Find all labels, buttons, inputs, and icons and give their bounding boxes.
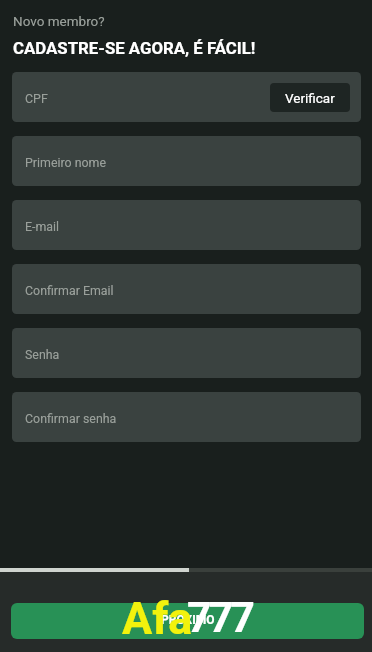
staticText: PRÓXIMO [161, 613, 215, 627]
button[interactable]: Confirmar Email [12, 264, 361, 314]
staticText: Confirmar Email [25, 283, 114, 298]
button[interactable]: PRÓXIMO [11, 603, 364, 639]
button[interactable]: Confirmar senha [12, 392, 361, 442]
button[interactable]: Senha [12, 328, 361, 378]
other: Progresso do cadastro [0, 568, 372, 572]
button[interactable]: Primeiro nome [12, 136, 361, 186]
staticText: Senha [25, 347, 60, 362]
button[interactable]: E-mail [12, 200, 361, 250]
staticText: Novo membro? [13, 13, 105, 29]
staticText: Verificar [285, 90, 335, 106]
staticText: Confirmar senha [25, 411, 117, 426]
staticText: Afa [122, 592, 193, 645]
staticText: E-mail [25, 219, 60, 234]
button[interactable]: Verificar [270, 83, 350, 112]
button[interactable]: CPF [12, 72, 361, 122]
staticText: CADASTRE-SE AGORA, É FÁCIL! [13, 38, 256, 58]
staticText: CPF [25, 91, 48, 106]
staticText: 777 [187, 592, 253, 642]
staticText: Primeiro nome [25, 155, 107, 170]
